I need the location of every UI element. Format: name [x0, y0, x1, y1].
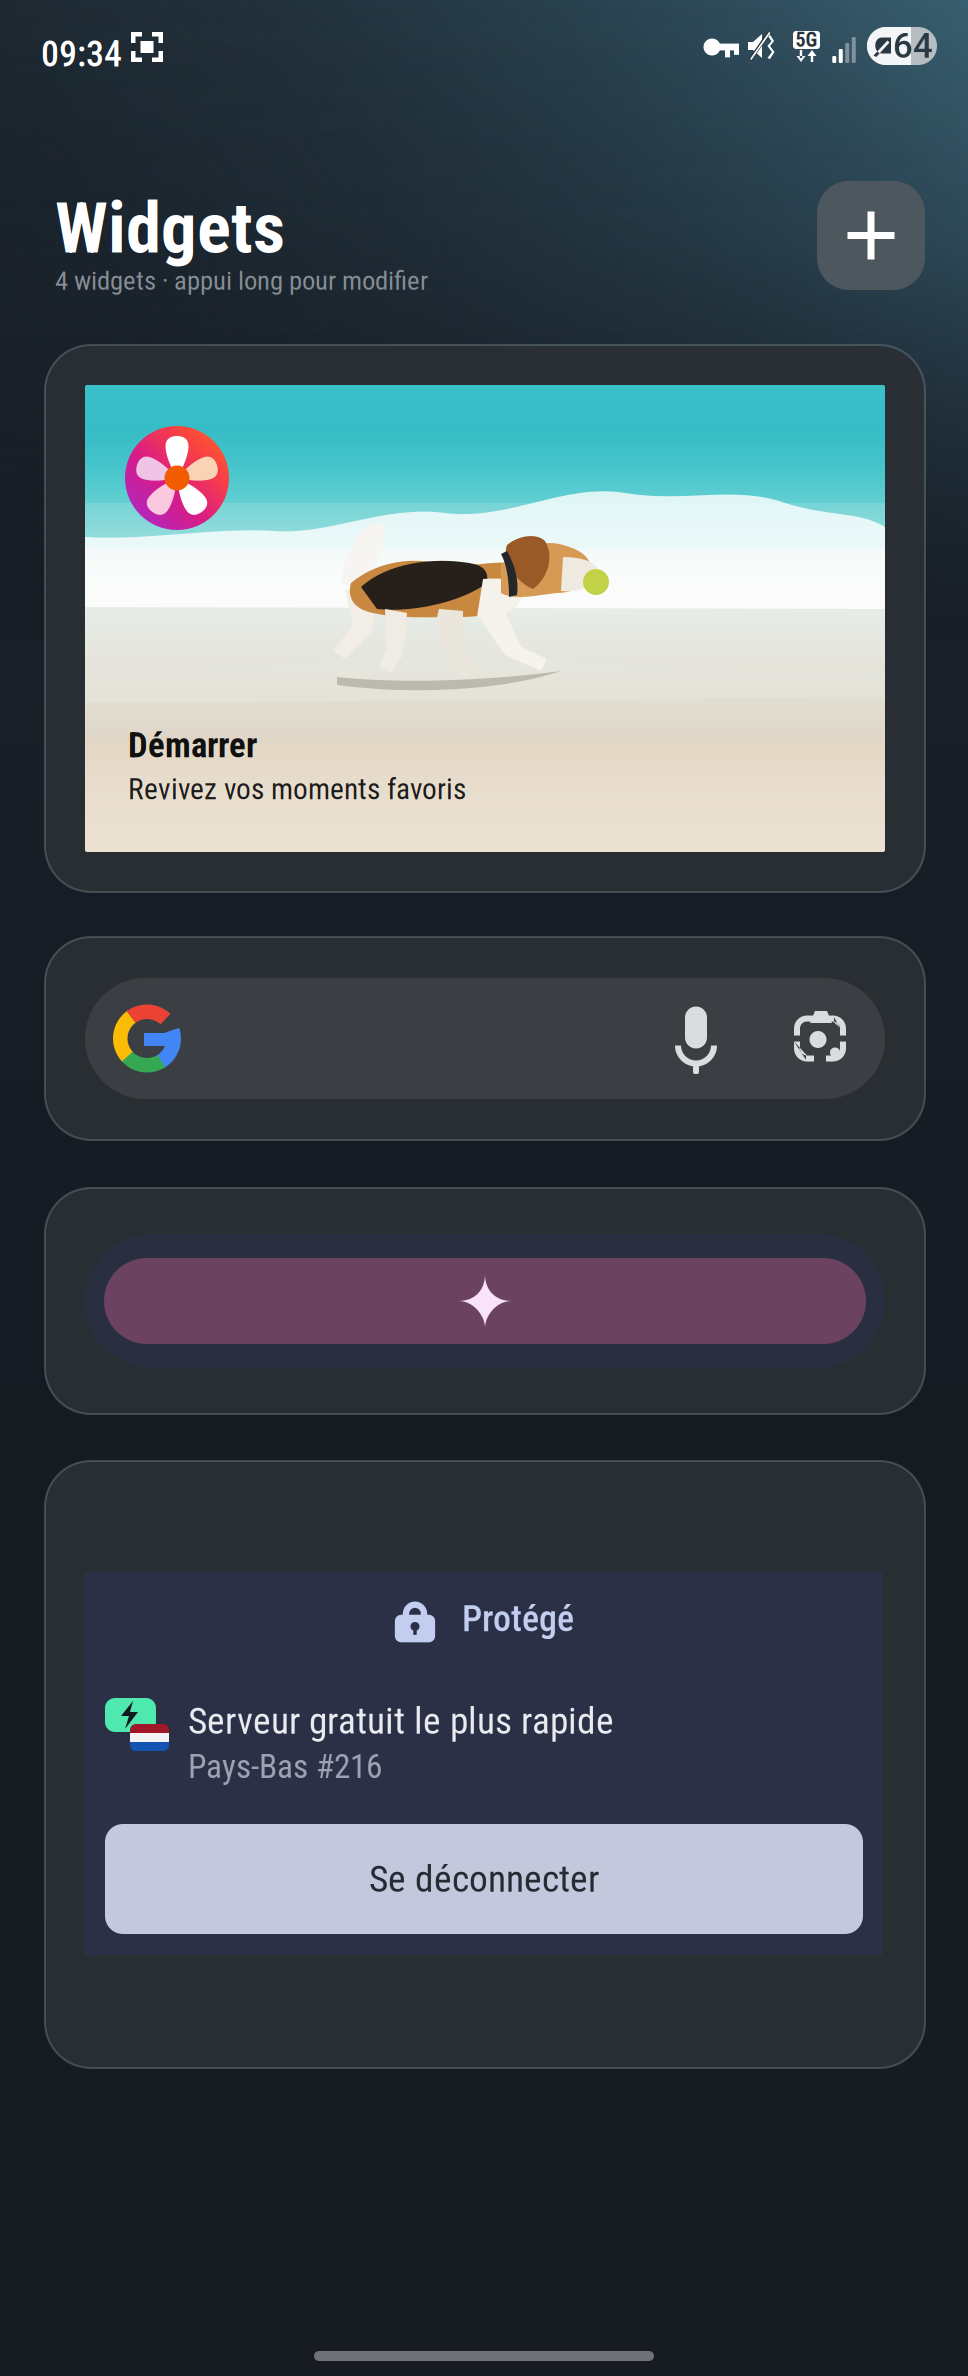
staticText: 5G [795, 28, 817, 52]
staticText: Protégé [462, 1598, 574, 1640]
staticText: 64 [893, 26, 933, 66]
staticText: Serveur gratuit le plus rapide [188, 1699, 614, 1743]
staticText: Revivez vos moments favoris [128, 772, 466, 806]
staticText: 4 widgets · appui long pour modifier [55, 265, 428, 296]
button[interactable]: Google search [45, 937, 925, 1140]
staticText: 09:34 [41, 33, 122, 75]
button[interactable]: Add widget [817, 181, 925, 290]
button[interactable]: Démarrer [45, 345, 925, 892]
staticText: Démarrer [128, 725, 257, 766]
button[interactable]: Gemini [45, 1188, 925, 1414]
staticText: Pays-Bas #216 [188, 1747, 382, 1786]
button[interactable]: Se déconnecter [105, 1824, 863, 1934]
staticText: Se déconnecter [369, 1857, 599, 1901]
staticText: Widgets [55, 187, 285, 270]
